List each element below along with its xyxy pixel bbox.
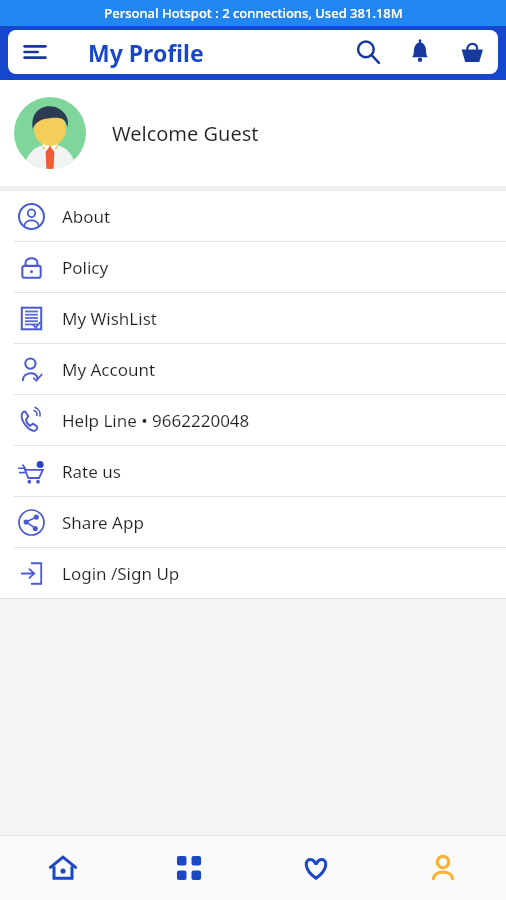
staticText: Help Line • 9662220048: [62, 409, 250, 432]
staticText: Welcome Guest: [112, 120, 259, 147]
staticText: My Account: [62, 358, 156, 381]
staticText: My Profile: [88, 37, 204, 68]
button[interactable]: Notifications: [394, 30, 446, 74]
staticText: About: [62, 205, 111, 228]
staticText: Share App: [62, 511, 144, 534]
button[interactable]: About: [0, 191, 506, 241]
staticText: My WishList: [62, 307, 157, 330]
button[interactable]: Menu: [8, 30, 62, 74]
button[interactable]: Cart: [446, 30, 498, 74]
button[interactable]: Share App: [0, 497, 506, 547]
button[interactable]: Help Line • 9662220048: [0, 395, 506, 445]
button[interactable]: Welcome Guest: [0, 80, 506, 186]
staticText: Personal Hotspot : 2 connections, Used 3…: [104, 4, 403, 22]
button[interactable]: Policy: [0, 242, 506, 292]
staticText: Rate us: [62, 460, 121, 483]
button[interactable]: Login /Sign Up: [0, 548, 506, 598]
staticText: Policy: [62, 256, 109, 279]
button[interactable]: Categories: [126, 836, 252, 900]
button[interactable]: Home: [0, 836, 126, 900]
button[interactable]: Search: [342, 30, 394, 74]
button[interactable]: Rate us: [0, 446, 506, 496]
staticText: Login /Sign Up: [62, 562, 180, 585]
button[interactable]: Wishlist: [252, 836, 379, 900]
button[interactable]: My Account: [0, 344, 506, 394]
button[interactable]: My WishList: [0, 293, 506, 343]
button[interactable]: Profile: [379, 836, 506, 900]
